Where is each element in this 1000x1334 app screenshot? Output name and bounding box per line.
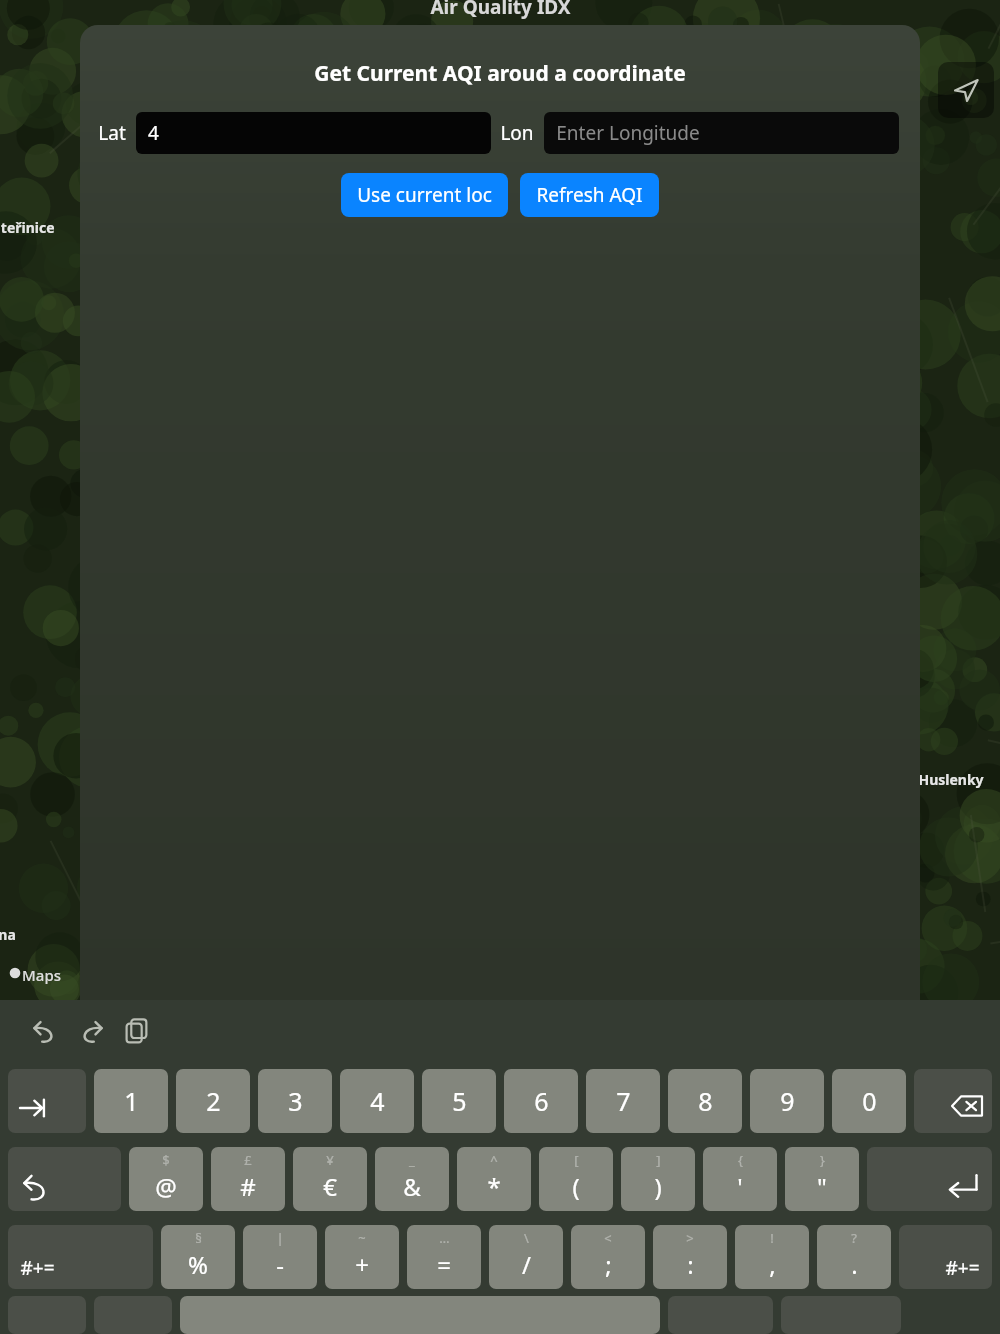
button[interactable]: [ <box>539 1147 613 1211</box>
button[interactable]: 4 <box>136 112 491 154</box>
button[interactable]: £ <box>211 1147 285 1211</box>
button[interactable]: ~ <box>325 1225 399 1289</box>
staticText: Lat <box>98 120 126 146</box>
staticText: … <box>439 1229 450 1247</box>
staticText: 0 <box>862 1084 877 1118</box>
button[interactable]: § <box>161 1225 235 1289</box>
button[interactable]: … <box>407 1225 481 1289</box>
staticText: 6 <box>534 1084 549 1118</box>
staticText: 3 <box>288 1084 303 1118</box>
button[interactable]: ! <box>735 1225 809 1289</box>
button[interactable]: 0 <box>832 1069 906 1133</box>
button[interactable]: 5 <box>422 1069 496 1133</box>
staticText: ateřinice <box>0 218 55 237</box>
staticText: Use current loc <box>357 182 492 208</box>
staticText: ! <box>770 1229 774 1247</box>
button[interactable]: | <box>243 1225 317 1289</box>
staticText: Huslenky <box>918 770 984 789</box>
staticText: £ <box>244 1151 252 1169</box>
button[interactable]: Return <box>867 1147 992 1211</box>
button[interactable]: $ <box>129 1147 203 1211</box>
staticText: > <box>686 1229 694 1247</box>
staticText: § <box>195 1229 202 1247</box>
button[interactable]: 7 <box>586 1069 660 1133</box>
staticText: Lon <box>500 120 534 146</box>
staticText: € <box>323 1170 337 1203</box>
button[interactable]: Tab <box>8 1069 86 1133</box>
button[interactable]: \ <box>489 1225 563 1289</box>
staticText: : <box>687 1248 694 1281</box>
button[interactable]: #+= <box>8 1225 153 1289</box>
staticText: + <box>355 1248 369 1281</box>
staticText: 5 <box>452 1084 467 1118</box>
button[interactable]: Undo <box>22 1008 68 1054</box>
button[interactable]: Use current loc <box>341 173 508 217</box>
button[interactable]: 2 <box>176 1069 250 1133</box>
staticText: Enter Longitude <box>556 120 700 146</box>
staticText: ? <box>851 1229 857 1247</box>
button[interactable]: < <box>571 1225 645 1289</box>
staticText: [ <box>574 1151 579 1169</box>
staticText: < <box>604 1229 612 1247</box>
staticText: ^ <box>490 1151 498 1169</box>
staticText: / <box>522 1248 531 1281</box>
staticText: ) <box>654 1170 662 1203</box>
button[interactable]: ¥ <box>293 1147 367 1211</box>
staticText: = <box>437 1248 451 1281</box>
staticText: # <box>240 1170 256 1203</box>
button[interactable]: 6 <box>504 1069 578 1133</box>
staticText: #+= <box>945 1255 980 1281</box>
button[interactable]: Enter Longitude <box>544 112 899 154</box>
staticText: ' <box>737 1170 743 1203</box>
staticText: | <box>276 1229 284 1247</box>
staticText: 8 <box>698 1084 713 1118</box>
button[interactable]: Center on current location <box>938 62 994 118</box>
staticText: 9 <box>780 1084 795 1118</box>
button[interactable]: } <box>785 1147 859 1211</box>
button[interactable]: #+= <box>899 1225 992 1289</box>
staticText: 4 <box>370 1084 385 1118</box>
staticText: #+= <box>20 1255 55 1281</box>
button[interactable]: Paste <box>114 1008 160 1054</box>
button[interactable]: ? <box>817 1225 891 1289</box>
staticText: ] <box>656 1151 661 1169</box>
staticText: . <box>851 1248 858 1281</box>
staticText: } <box>820 1151 825 1169</box>
staticText: - <box>276 1248 284 1281</box>
staticText: 2 <box>206 1084 221 1118</box>
staticText: ; <box>605 1248 612 1281</box>
staticText: { <box>738 1151 743 1169</box>
button[interactable]: Redo <box>68 1008 114 1054</box>
staticText: % <box>188 1248 208 1281</box>
button[interactable]: ^ <box>457 1147 531 1211</box>
staticText: $ <box>162 1151 170 1169</box>
button[interactable]: _ <box>375 1147 449 1211</box>
button[interactable]: 8 <box>668 1069 742 1133</box>
staticText: @ <box>155 1170 177 1203</box>
button[interactable]: 3 <box>258 1069 332 1133</box>
button[interactable]: ] <box>621 1147 695 1211</box>
staticText: Maps <box>22 965 61 985</box>
button[interactable]: 9 <box>750 1069 824 1133</box>
staticText: 7 <box>616 1084 631 1118</box>
button[interactable]: Space <box>180 1296 660 1334</box>
staticText: 4 <box>148 120 159 146</box>
button[interactable]: > <box>653 1225 727 1289</box>
staticText: " <box>817 1170 827 1203</box>
staticText: * <box>487 1170 501 1203</box>
button[interactable]: 4 <box>340 1069 414 1133</box>
button[interactable]: Refresh AQI <box>520 173 659 217</box>
staticText: ina <box>0 925 16 944</box>
button[interactable]: Backspace <box>914 1069 992 1133</box>
button[interactable]: { <box>703 1147 777 1211</box>
staticText: _ <box>409 1151 415 1169</box>
button[interactable]: 1 <box>94 1069 168 1133</box>
staticText: 1 <box>124 1084 139 1118</box>
staticText: , <box>769 1248 776 1281</box>
button[interactable]: Shift / Undo <box>8 1147 121 1211</box>
staticText: \ <box>524 1229 529 1247</box>
